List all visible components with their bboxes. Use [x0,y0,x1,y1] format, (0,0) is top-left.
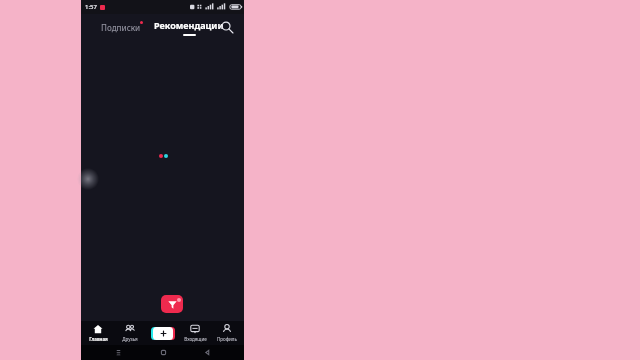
button[interactable]: Подписки [97,19,145,36]
button[interactable]: Главная [83,321,113,345]
button[interactable]: Рекомендации [150,18,228,37]
button[interactable]: Профиль [212,321,242,345]
button[interactable]: Home [155,345,171,360]
staticText: 1:57 [85,3,97,11]
button[interactable]: Входящие [180,321,210,345]
button[interactable]: Recents [110,345,126,360]
button[interactable]: Create [148,321,178,345]
staticText: Друзья [122,336,138,342]
button[interactable]: Друзья [115,321,145,345]
staticText: Профиль [217,336,237,342]
button[interactable]: Filter [161,295,183,313]
button[interactable]: Back [199,345,215,360]
staticText: Рекомендации [154,19,224,31]
staticText: Входящие [184,336,207,342]
staticText: Главная [89,336,108,342]
staticText: Подписки [101,22,141,33]
button[interactable]: Search [217,17,237,37]
